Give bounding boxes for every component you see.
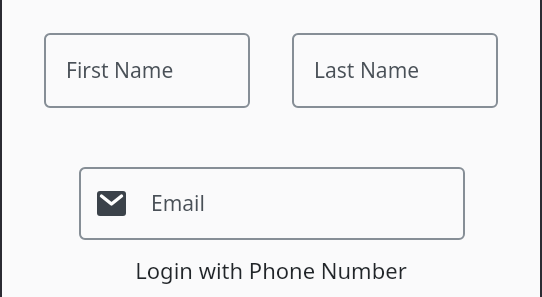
staticText: Last Name xyxy=(314,56,420,85)
staticText: Email xyxy=(151,189,205,218)
button[interactable]: First Name xyxy=(44,33,250,108)
button[interactable]: Last Name xyxy=(292,33,498,108)
staticText: First Name xyxy=(66,56,174,85)
other: Email xyxy=(79,167,465,240)
button[interactable]: Login with Phone Number xyxy=(135,255,407,285)
button[interactable]: Email xyxy=(79,167,465,240)
staticText: Login with Phone Number xyxy=(135,255,407,285)
